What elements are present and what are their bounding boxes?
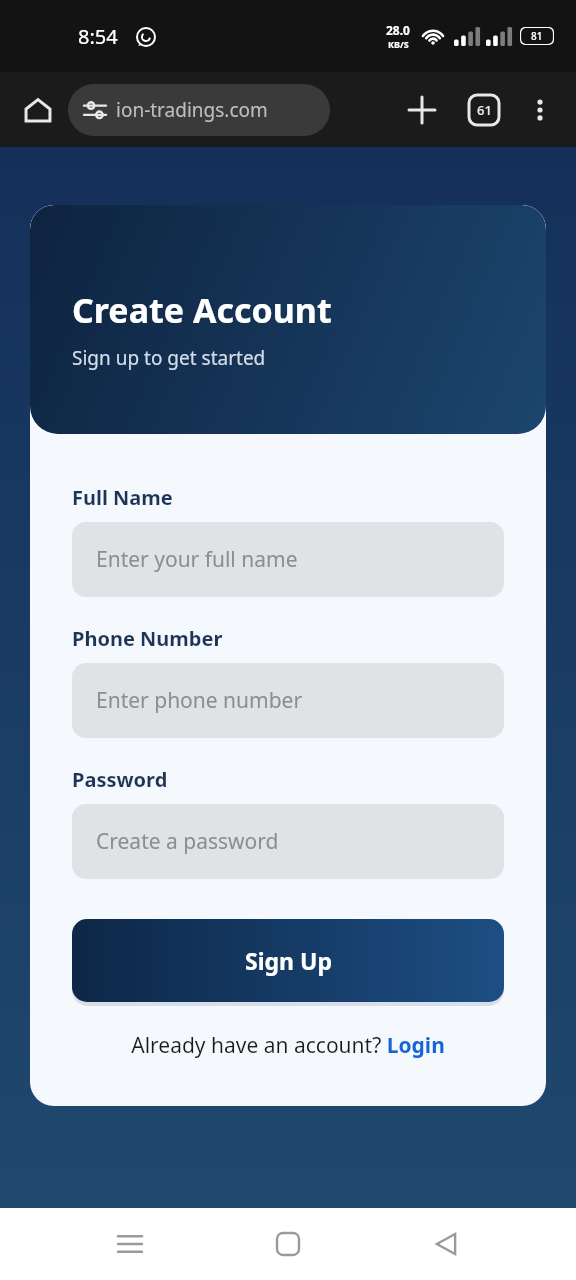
staticText: 28.0 <box>386 22 410 38</box>
button[interactable]: Already have an account? Login <box>30 1031 546 1060</box>
staticText: Enter phone number <box>96 686 303 715</box>
staticText: Create Account <box>72 287 332 333</box>
staticText: Enter your full name <box>96 545 298 574</box>
staticText: Sign Up <box>245 945 332 976</box>
button[interactable]: ion-tradings.com <box>68 84 330 136</box>
button[interactable]: Sign Up <box>72 919 504 1002</box>
staticText: Full Name <box>72 484 173 511</box>
staticText: 81 <box>531 29 543 43</box>
staticText: Phone Number <box>72 625 223 652</box>
button[interactable]: Back <box>418 1216 474 1272</box>
button[interactable]: Home <box>16 88 60 132</box>
staticText: 8:54 <box>78 23 118 50</box>
button[interactable]: Enter phone number <box>72 663 504 738</box>
staticText: Sign up to get started <box>72 345 266 371</box>
staticText: KB/S <box>388 38 409 50</box>
staticText: Already have an account? Login <box>131 1031 445 1060</box>
staticText: Create a password <box>96 827 279 856</box>
staticText: 61 <box>477 101 492 119</box>
button[interactable]: Tabs <box>462 88 506 132</box>
button[interactable]: New tab <box>400 88 444 132</box>
button[interactable]: Home <box>260 1216 316 1272</box>
button[interactable]: Create a password <box>72 804 504 879</box>
button[interactable]: Recent apps <box>102 1216 158 1272</box>
staticText: Password <box>72 766 168 793</box>
button[interactable]: More options <box>520 90 560 130</box>
staticText: ion-tradings.com <box>116 97 268 123</box>
button[interactable]: Enter your full name <box>72 522 504 597</box>
